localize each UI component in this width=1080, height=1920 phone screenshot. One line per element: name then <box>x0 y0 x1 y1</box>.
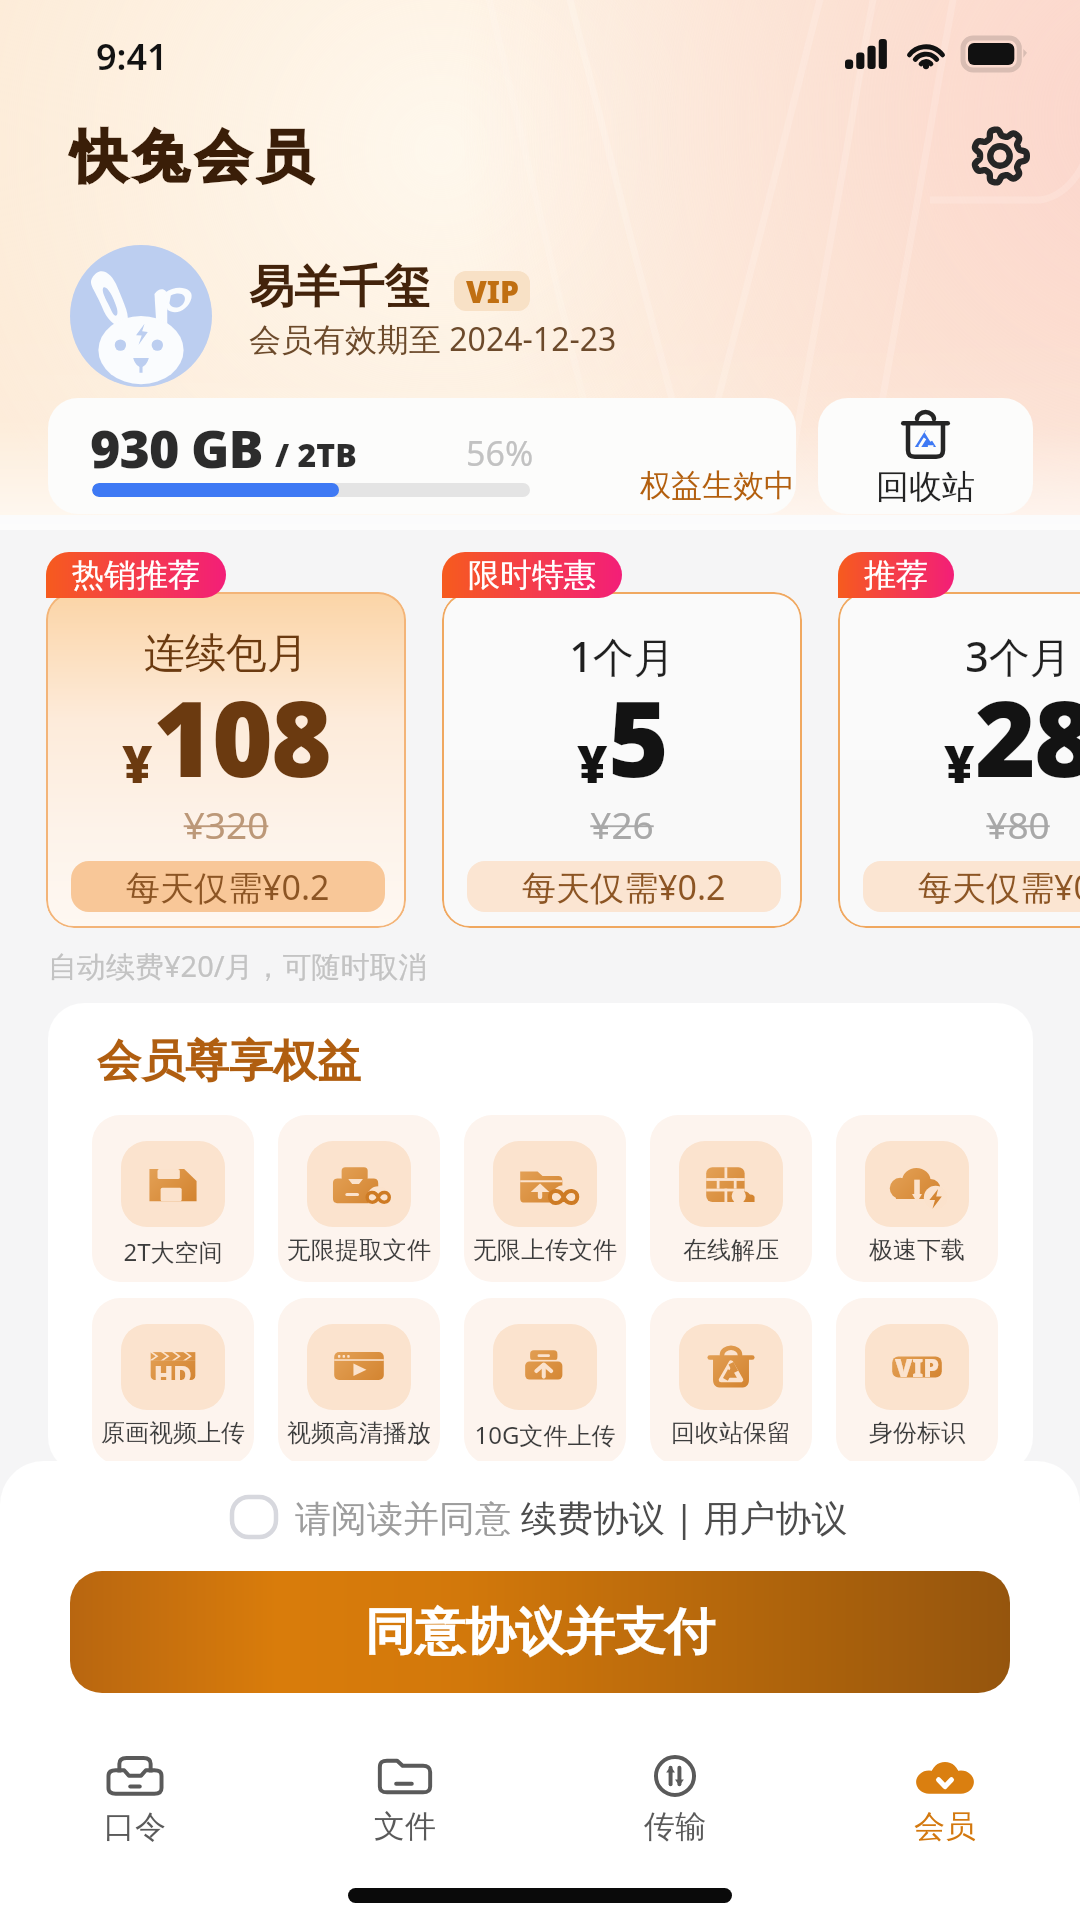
button[interactable]: 回收站保留 <box>650 1298 812 1465</box>
button[interactable]: 1个月 <box>442 592 802 928</box>
staticText: 原画视频上传 <box>92 1418 254 1448</box>
staticText: ¥ <box>577 727 608 798</box>
staticText: 口令 <box>104 1807 166 1846</box>
staticText: VIP <box>895 1350 940 1384</box>
staticText: ¥26 <box>442 799 802 849</box>
staticText: 每天仅需¥0.2 <box>918 864 1080 910</box>
staticText: 在线解压 <box>650 1235 812 1265</box>
staticText: 10G文件上传 <box>464 1418 626 1451</box>
staticText: / 2TB <box>275 433 357 477</box>
staticText: 无限上传文件 <box>464 1235 626 1265</box>
button[interactable]: HD <box>92 1298 254 1465</box>
staticText: 易羊千玺 <box>249 259 429 316</box>
staticText: 1个月 <box>442 628 802 684</box>
staticText: 每天仅需¥0.2 <box>522 864 726 910</box>
button[interactable]: 极速下载 <box>836 1115 998 1282</box>
button[interactable]: 930 GB <box>48 398 796 514</box>
button[interactable]: 在线解压 <box>650 1115 812 1282</box>
button[interactable]: 文件 <box>270 1742 540 1849</box>
staticText: VIP <box>466 271 519 311</box>
staticText: 热销推荐 <box>72 555 200 595</box>
staticText: 930 GB <box>90 412 263 483</box>
staticText: 5 <box>608 666 667 808</box>
staticText: 传输 <box>644 1807 706 1846</box>
button[interactable]: 会员 <box>810 1742 1080 1849</box>
staticText: 56% <box>466 430 534 476</box>
staticText: 文件 <box>374 1807 436 1846</box>
staticText: 续费协议 | 用户协议 <box>521 1493 848 1542</box>
staticText: 2T大空间 <box>92 1235 254 1268</box>
staticText: 请阅读并同意 <box>295 1493 521 1542</box>
staticText: 每天仅需¥0.2 <box>126 864 330 910</box>
staticText: 限时特惠 <box>468 555 596 595</box>
button[interactable]: 10G文件上传 <box>464 1298 626 1465</box>
staticText: 28 <box>975 666 1080 808</box>
button[interactable]: 回收站 <box>818 398 1033 514</box>
staticText: 视频高清播放 <box>278 1418 440 1448</box>
button[interactable]: VIP <box>836 1298 998 1465</box>
staticText: 极速下载 <box>836 1235 998 1265</box>
staticText: 连续包月 <box>46 628 406 680</box>
staticText: 快兔会员 <box>68 122 316 193</box>
button[interactable]: 视频高清播放 <box>278 1298 440 1465</box>
staticText: 回收站 <box>876 466 975 508</box>
staticText: ¥ <box>122 727 153 798</box>
button[interactable]: 3个月 <box>838 592 1080 928</box>
staticText: 108 <box>153 666 330 808</box>
staticText: 会员尊享权益 <box>97 1034 361 1089</box>
staticText: ¥80 <box>838 799 1080 849</box>
button[interactable]: 口令 <box>0 1742 270 1849</box>
button[interactable]: 连续包月 <box>46 592 406 928</box>
staticText: 会员 <box>914 1807 976 1846</box>
staticText: ¥ <box>944 727 975 798</box>
button[interactable]: 无限提取文件 <box>278 1115 440 1282</box>
staticText: 会员有效期至 2024-12-23 <box>249 317 617 361</box>
staticText: 自动续费¥20/月，可随时取消 <box>48 946 428 986</box>
staticText: 回收站保留 <box>650 1418 812 1448</box>
staticText: 身份标识 <box>836 1418 998 1448</box>
button[interactable]: 请阅读并同意 <box>0 1489 1080 1545</box>
staticText: 9:41 <box>96 32 168 81</box>
staticText: HD <box>154 1357 192 1391</box>
staticText: 推荐 <box>864 555 928 595</box>
staticText: 无限提取文件 <box>278 1235 440 1265</box>
button[interactable]: 2T大空间 <box>92 1115 254 1282</box>
button[interactable]: 无限上传文件 <box>464 1115 626 1282</box>
staticText: 权益生效中 <box>640 466 795 505</box>
staticText: 同意协议并支付 <box>365 1601 715 1664</box>
button[interactable]: 传输 <box>540 1742 810 1849</box>
button[interactable]: 同意协议并支付 <box>70 1571 1010 1693</box>
staticText: 3个月 <box>838 628 1080 684</box>
staticText: ¥320 <box>46 799 406 849</box>
button[interactable]: Settings <box>964 120 1036 192</box>
